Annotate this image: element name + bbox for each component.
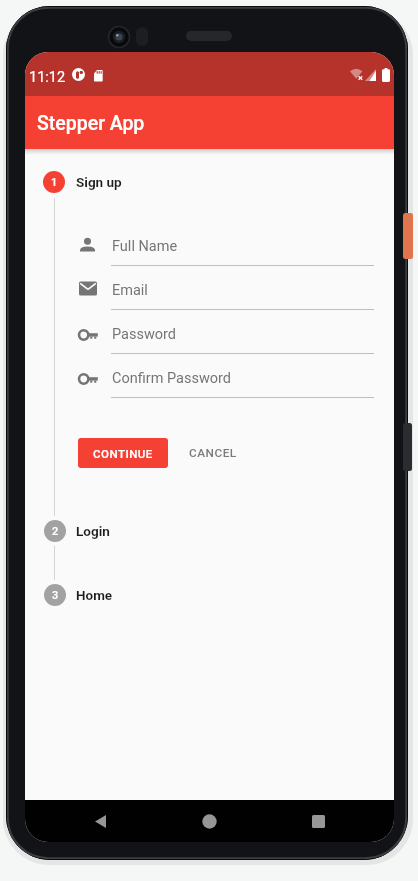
button[interactable]: CONTINUE <box>78 438 168 468</box>
button[interactable] <box>185 800 233 842</box>
button[interactable]: CANCEL <box>183 438 243 468</box>
button[interactable]: 2 <box>44 520 204 542</box>
staticText: Confirm Password <box>112 370 232 387</box>
staticText: Email <box>112 282 148 299</box>
button[interactable]: Email <box>78 273 374 310</box>
button[interactable]: Full Name <box>78 229 374 266</box>
staticText: Stepper App <box>37 112 145 135</box>
staticText: CANCEL <box>189 446 237 460</box>
staticText: 3 <box>52 589 59 602</box>
staticText: 11:12 <box>29 69 66 86</box>
button[interactable] <box>294 800 342 842</box>
staticText: 2 <box>52 525 59 538</box>
staticText: Full Name <box>112 238 178 255</box>
button[interactable] <box>76 800 124 842</box>
staticText: Login <box>76 523 110 539</box>
staticText: CONTINUE <box>93 447 153 460</box>
staticText: 1 <box>51 176 58 189</box>
button[interactable]: 3 <box>44 584 204 606</box>
button[interactable]: Password <box>78 317 374 354</box>
button[interactable]: 1 <box>43 171 203 193</box>
staticText: Sign up <box>76 174 122 190</box>
button[interactable]: Confirm Password <box>78 361 374 398</box>
staticText: Password <box>112 326 177 343</box>
staticText: Home <box>76 587 113 603</box>
